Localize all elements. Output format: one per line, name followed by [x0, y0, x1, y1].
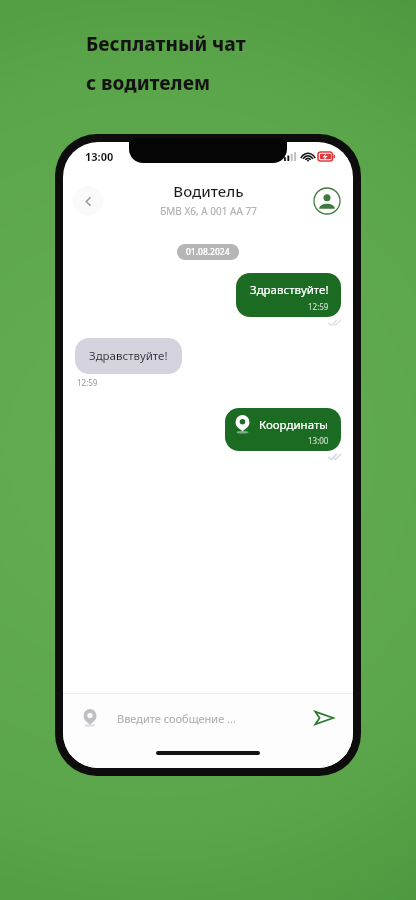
button[interactable]: Здравствуйте! — [236, 273, 341, 317]
staticText: 12:59 — [308, 301, 329, 312]
staticText: Введите сообщение ... — [117, 711, 236, 726]
staticText: 01.08.2024 — [186, 246, 230, 258]
staticText: с водителем — [86, 70, 211, 96]
button[interactable]: Back — [73, 186, 103, 216]
staticText: Координаты — [259, 417, 329, 433]
staticText: 13:00 — [308, 435, 329, 446]
staticText: Здравствуйте! — [250, 282, 329, 298]
staticText: Бесплатный чат — [86, 31, 246, 57]
button[interactable]: Введите сообщение ... — [117, 711, 309, 726]
button[interactable]: Координаты — [225, 408, 341, 451]
staticText: БМВ X6, A 001 AA 77 — [160, 204, 257, 218]
button[interactable]: Send — [309, 703, 339, 733]
button[interactable]: Здравствуйте! — [75, 338, 182, 374]
button[interactable]: Send location — [77, 705, 103, 731]
button[interactable]: Profile — [313, 187, 341, 215]
staticText: 13:00 — [85, 149, 114, 164]
staticText: Здравствуйте! — [89, 348, 168, 364]
staticText: 12:59 — [77, 377, 98, 388]
staticText: Водитель — [173, 181, 244, 201]
